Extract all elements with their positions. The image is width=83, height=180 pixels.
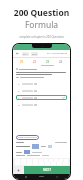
button[interactable]: a — [16, 81, 67, 86]
button[interactable]: 21 — [16, 58, 28, 65]
staticText: CH 1 — [23, 53, 28, 56]
button[interactable]: Home — [39, 176, 44, 177]
button[interactable]: c — [16, 95, 67, 100]
button[interactable]: 23 — [41, 58, 54, 65]
staticText: b — [18, 89, 20, 92]
button[interactable]: show me formula — [16, 135, 39, 140]
button[interactable]: d — [16, 102, 67, 107]
staticText: 200 Question Formula — [0, 7, 83, 31]
button[interactable]: 24 — [54, 58, 67, 65]
staticText: 21 — [20, 60, 24, 64]
button[interactable]: Back — [15, 51, 20, 56]
staticText: complete a chapter in 200 Questions — [19, 35, 64, 39]
button[interactable]: Q 24 — [31, 52, 38, 56]
staticText: NEXT — [43, 168, 51, 172]
staticText: d — [18, 103, 20, 106]
staticText: c — [18, 96, 20, 99]
staticText: a — [18, 82, 20, 85]
button[interactable]: b — [16, 88, 67, 93]
button[interactable]: NEXT — [24, 166, 70, 174]
button[interactable]: 56 / 2100 answered — [47, 52, 68, 55]
button[interactable]: 22 — [28, 58, 41, 65]
staticText: 23 — [46, 60, 50, 64]
staticText: 22 — [33, 60, 37, 64]
staticText: show me formula — [18, 136, 37, 139]
staticText: 24 — [59, 60, 63, 64]
button[interactable]: Navigation — [13, 166, 24, 174]
staticText: Q 24 — [32, 53, 37, 56]
button[interactable]: CH 1 — [22, 52, 29, 56]
